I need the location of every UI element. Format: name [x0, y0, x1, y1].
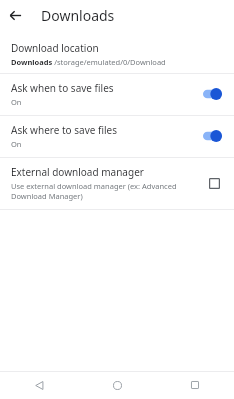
- staticText: Use external download manager (ex: Advan…: [11, 181, 195, 201]
- button[interactable]: External download manager: [0, 158, 234, 209]
- button[interactable]: Recent apps: [156, 371, 234, 399]
- button[interactable]: External download manager checkbox: [203, 172, 225, 194]
- button[interactable]: Download location: [0, 37, 234, 73]
- staticText: Downloads /storage/emulated/0/Download: [11, 57, 166, 67]
- staticText: Download location: [11, 41, 99, 55]
- button[interactable]: Ask where to save files: [0, 116, 234, 157]
- staticText: Ask when to save files: [11, 81, 114, 95]
- staticText: Ask where to save files: [11, 123, 117, 137]
- staticText: Downloads: [41, 6, 115, 25]
- button[interactable]: Ask where to save files toggle: [201, 127, 227, 145]
- button[interactable]: Home: [78, 371, 156, 399]
- staticText: External download manager: [11, 165, 144, 179]
- button[interactable]: Ask when to save files: [0, 74, 234, 115]
- staticText: On: [11, 139, 22, 149]
- staticText: On: [11, 97, 22, 107]
- button[interactable]: Back: [0, 371, 78, 399]
- button[interactable]: Ask when to save files toggle: [201, 85, 227, 103]
- button[interactable]: Back: [0, 0, 30, 30]
